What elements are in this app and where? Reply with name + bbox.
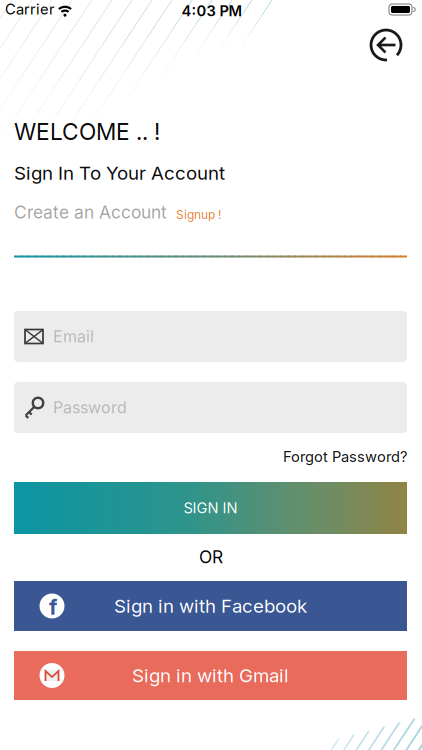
staticText: 4:03 PM — [181, 2, 242, 20]
staticText: Email — [53, 327, 94, 346]
button[interactable]: SIGN IN — [14, 482, 407, 534]
staticText: Password — [53, 397, 127, 416]
button[interactable]: Sign in with Facebook — [14, 581, 407, 631]
textField[interactable]: Email — [53, 326, 393, 345]
staticText: Carrier — [5, 0, 55, 18]
textField[interactable]: Password — [53, 397, 393, 416]
staticText: Signup ! — [176, 207, 221, 222]
staticText: Create an Account — [14, 202, 167, 222]
staticText: Sign in with Facebook — [114, 595, 307, 617]
staticText: SIGN IN — [183, 499, 237, 517]
staticText: Email — [53, 326, 94, 345]
staticText: Forgot Password? — [283, 448, 407, 465]
staticText: Password — [53, 398, 127, 417]
staticText: OR — [199, 547, 223, 567]
staticText: WELCOME .. ! — [14, 118, 160, 145]
button[interactable]: Forgot Password? — [283, 448, 407, 465]
button[interactable]: Sign in with Gmail — [14, 651, 407, 700]
staticText: Sign in with Gmail — [132, 664, 289, 686]
button[interactable]: Back — [364, 23, 408, 67]
staticText: Sign In To Your Account — [14, 162, 225, 184]
staticText: f — [49, 594, 57, 620]
button[interactable]: Signup ! — [176, 207, 221, 222]
